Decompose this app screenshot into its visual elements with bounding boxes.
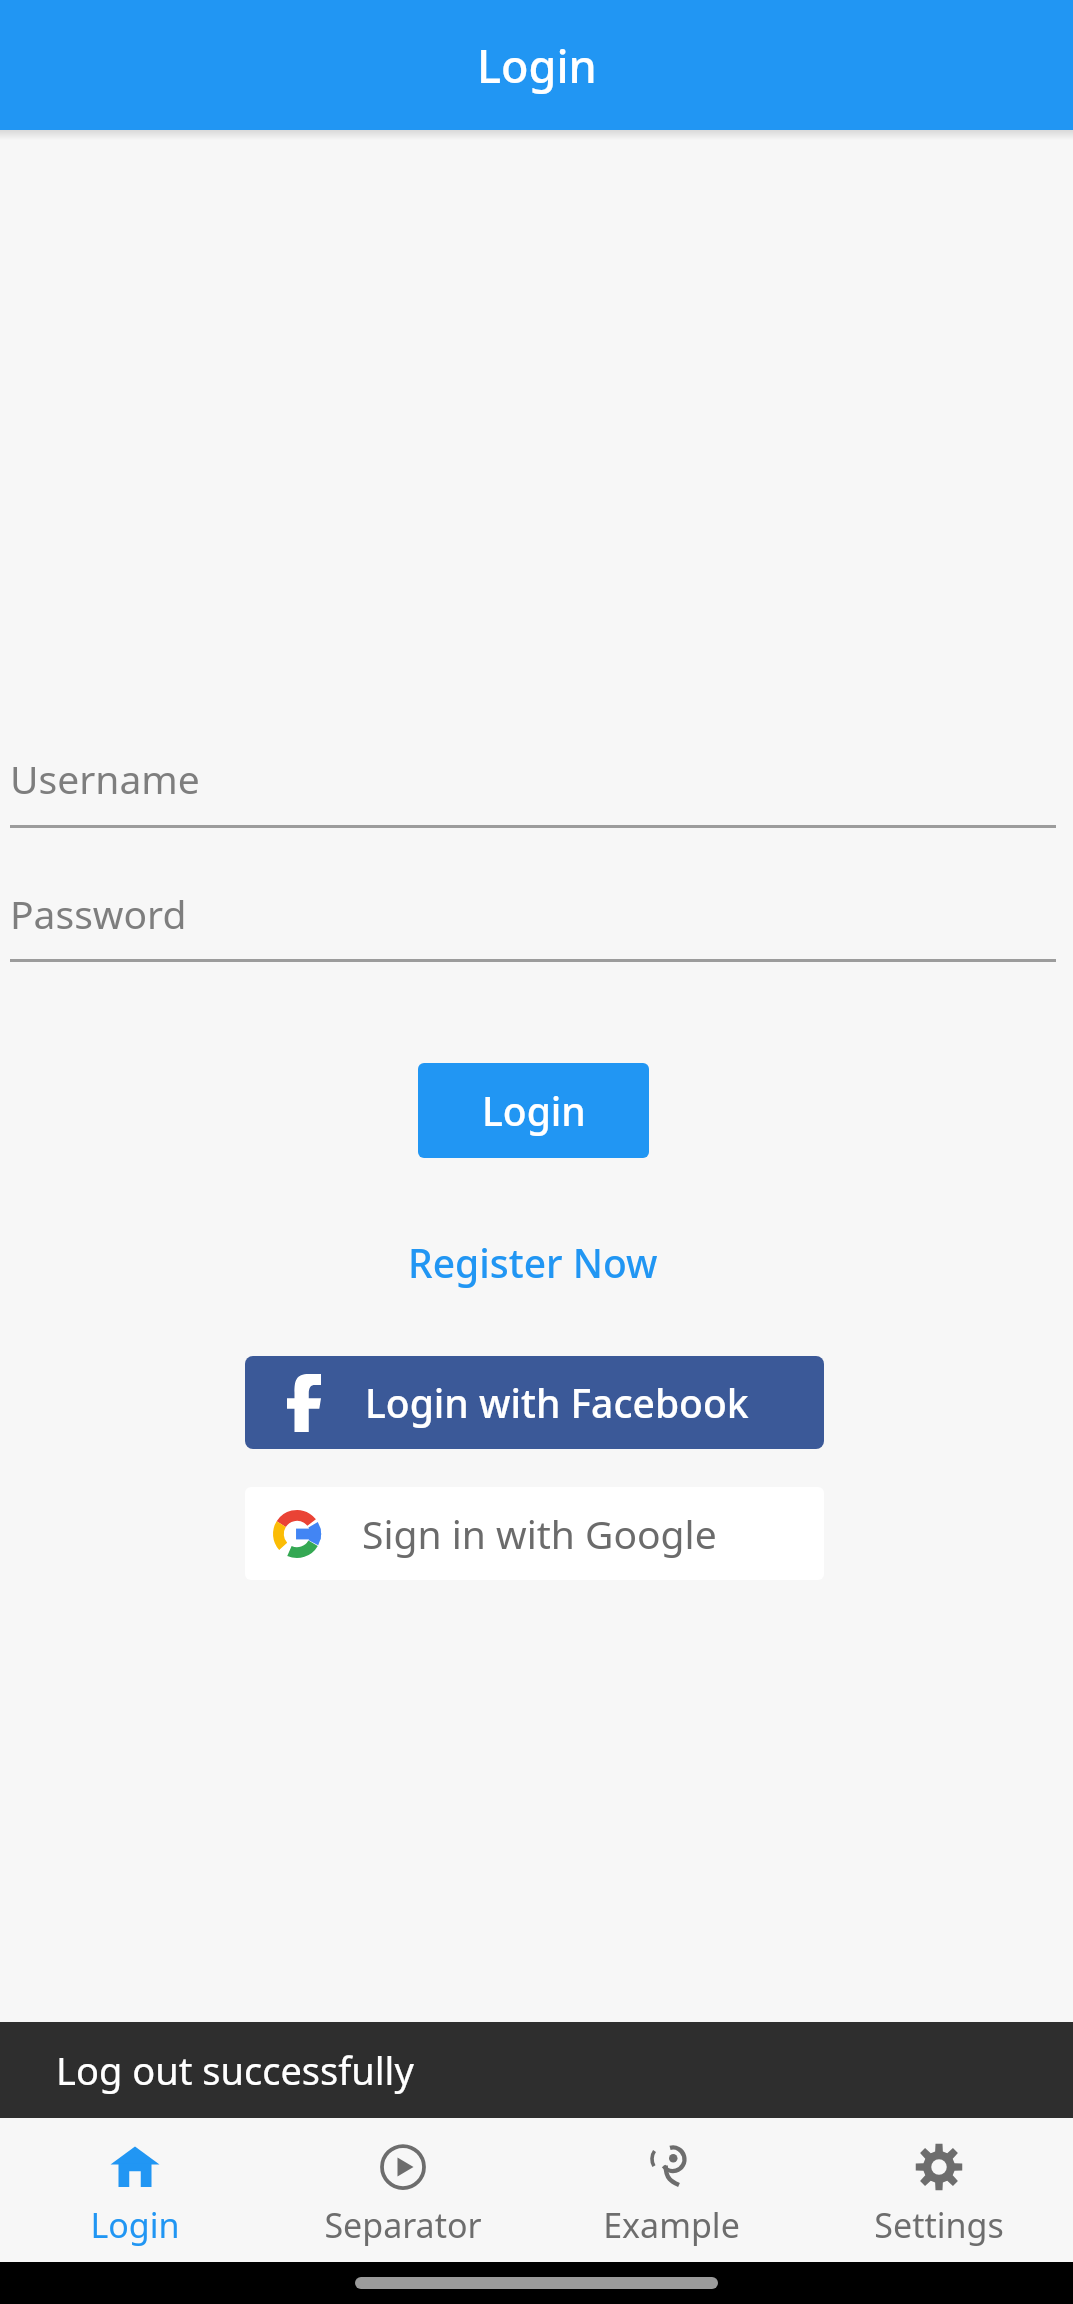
staticText: Settings <box>874 2202 1004 2248</box>
staticText: Login with Facebook <box>365 1376 749 1429</box>
button[interactable]: Settings <box>805 2118 1073 2262</box>
staticText: Username <box>10 752 200 805</box>
button[interactable]: Separator <box>269 2118 537 2262</box>
staticText: Password <box>10 887 187 940</box>
button[interactable]: Login <box>418 1063 649 1158</box>
button[interactable]: Register Now <box>398 1228 668 1297</box>
button[interactable]: Password <box>10 865 1056 961</box>
staticText: Login <box>482 1084 586 1137</box>
button[interactable]: Sign in with Google <box>245 1487 824 1580</box>
staticText: Separator <box>324 2202 482 2248</box>
staticText: Login <box>477 35 597 96</box>
staticText: Register Now <box>408 1236 658 1289</box>
button[interactable]: Login with Facebook <box>245 1356 824 1449</box>
staticText: Sign in with Google <box>362 1507 717 1560</box>
button[interactable]: Example <box>537 2118 805 2262</box>
staticText: Log out successfully <box>56 2044 414 2096</box>
button[interactable]: Login <box>0 2118 269 2262</box>
button[interactable]: Username <box>10 730 1056 826</box>
staticText: Example <box>603 2202 740 2248</box>
staticText: Login <box>90 2202 180 2248</box>
